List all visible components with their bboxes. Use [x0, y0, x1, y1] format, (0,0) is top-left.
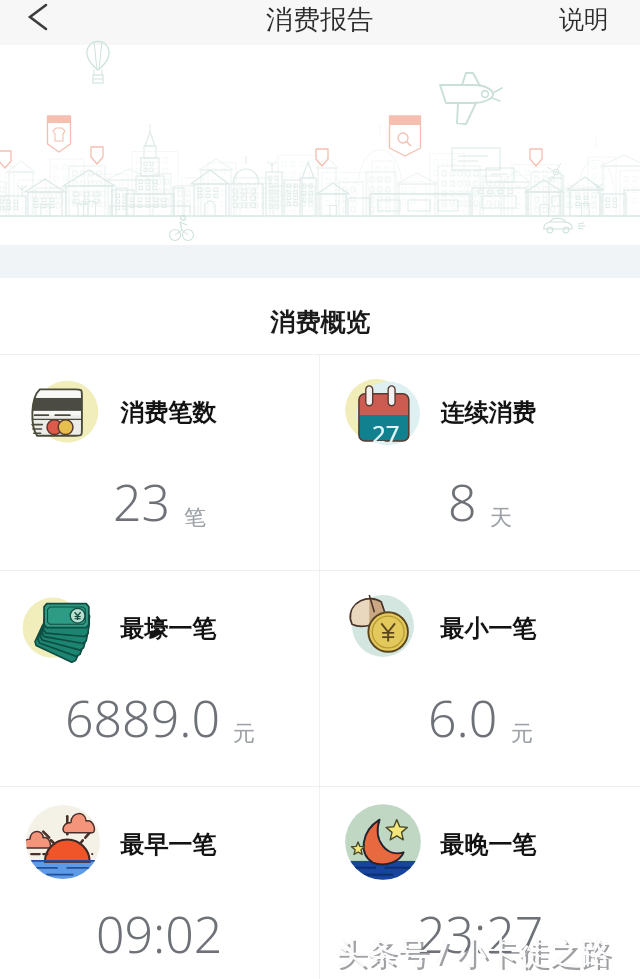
staticText: 最壕一笔	[120, 614, 216, 644]
staticText: 头条号 / 小卡徒之路	[338, 933, 614, 975]
staticText: 最小一笔	[440, 614, 536, 644]
staticText: 6889.0	[65, 684, 220, 752]
staticText: 笔	[184, 504, 206, 532]
staticText: 27	[372, 417, 400, 450]
button[interactable]: 27	[320, 355, 640, 570]
staticText: 元	[511, 720, 533, 748]
button[interactable]: 最早一笔	[0, 787, 319, 979]
staticText: 23	[113, 468, 171, 536]
staticText: 天	[490, 504, 512, 532]
button[interactable]: 消费笔数	[0, 355, 319, 570]
staticText: 6.0	[428, 684, 498, 752]
staticText: 消费报告	[266, 3, 374, 37]
staticText: 消费概览	[270, 307, 370, 338]
button[interactable]: 最晚一笔	[320, 787, 640, 979]
staticText: 元	[233, 720, 255, 748]
staticText: 连续消费	[440, 398, 536, 428]
button[interactable]: Back	[0, 0, 76, 45]
staticText: 消费笔数	[120, 398, 216, 428]
staticText: 说明	[559, 4, 609, 35]
staticText: 09:02	[96, 900, 223, 968]
staticText: 8	[448, 468, 477, 536]
staticText: 最晚一笔	[440, 830, 536, 860]
button[interactable]: 最小一笔	[320, 571, 640, 786]
staticText: 最早一笔	[120, 830, 216, 860]
staticText: 头条号 / 小卡徒之路	[335, 930, 611, 972]
staticText: 23:27	[417, 900, 544, 968]
button[interactable]: 最壕一笔	[0, 571, 319, 786]
button[interactable]: 说明	[539, 0, 640, 45]
